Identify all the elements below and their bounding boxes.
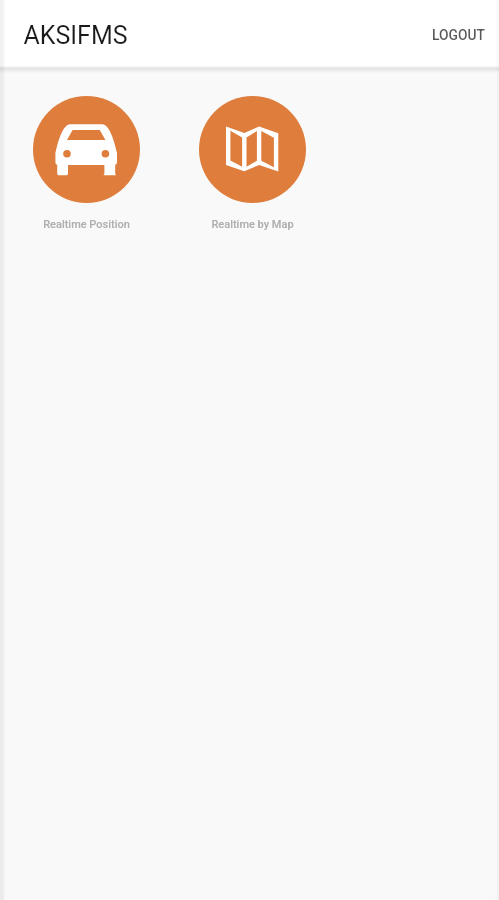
staticText: LOGOUT: [432, 27, 485, 43]
button[interactable]: LOGOUT: [418, 15, 499, 51]
staticText: Realtime by Map: [211, 218, 294, 231]
button[interactable]: Realtime by Map: [169, 96, 335, 231]
other: Realtime by Map: [199, 96, 306, 203]
other: Realtime Position: [33, 96, 140, 203]
button[interactable]: Realtime Position: [3, 96, 169, 231]
staticText: AKSIFMS: [23, 21, 128, 50]
staticText: Realtime Position: [43, 218, 130, 231]
